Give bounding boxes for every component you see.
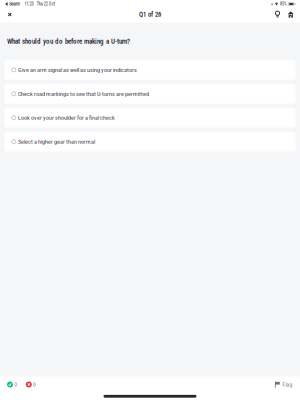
staticText: Look over your shoulder for a final chec… (18, 114, 115, 121)
button[interactable]: Check road markings to see that U-turns … (4, 84, 295, 104)
staticText: Thu 22 Oct (37, 1, 55, 7)
button[interactable]: Look over your shoulder for a final chec… (4, 108, 295, 128)
staticText: 85% (280, 1, 287, 7)
staticText: Flag (282, 381, 292, 388)
staticText: Q1 of 26 (139, 11, 161, 18)
button[interactable]: Close (2, 8, 17, 21)
staticText: Select a higher gear than normal (18, 138, 95, 145)
staticText: Check road markings to see that U-turns … (18, 90, 149, 97)
staticText: Give an arm signal as well as using your… (18, 66, 137, 73)
button[interactable]: Give an arm signal as well as using your… (4, 60, 295, 80)
button[interactable]: Home (284, 8, 297, 21)
staticText: What should you do before making a U-tur… (7, 37, 130, 45)
staticText: Search (9, 1, 20, 7)
staticText: 11:23 (24, 1, 33, 7)
button[interactable]: Hint (271, 8, 284, 21)
staticText: 0 (33, 381, 36, 388)
staticText: 0 (14, 381, 17, 388)
button[interactable]: Select a higher gear than normal (4, 132, 295, 151)
button[interactable]: Flag (273, 379, 294, 390)
